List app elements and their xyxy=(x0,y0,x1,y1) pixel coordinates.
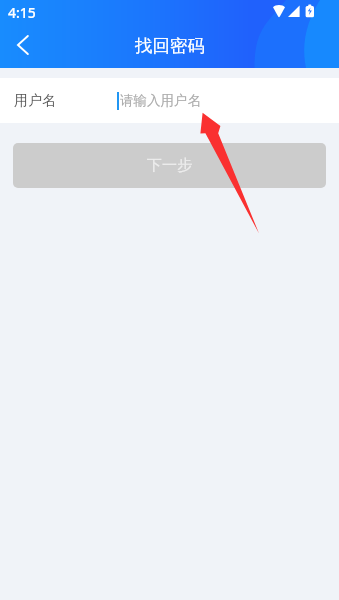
button[interactable]: 用户名 xyxy=(0,78,339,123)
button[interactable]: 下一步 xyxy=(13,143,326,188)
staticText: 下一步 xyxy=(147,156,192,175)
staticText: 4:15 xyxy=(8,3,36,22)
staticText: 请输入用户名 xyxy=(120,92,201,109)
staticText: 找回密码 xyxy=(135,35,205,57)
staticText: 用户名 xyxy=(14,92,56,110)
button[interactable]: Back xyxy=(4,26,42,64)
